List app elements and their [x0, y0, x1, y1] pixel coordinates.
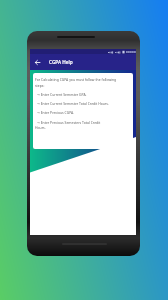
staticText: → Enter Previous CGPA.: [37, 110, 75, 115]
staticText: → Enter Previous Semesters Total Credit: [37, 120, 101, 125]
staticText: → Enter Current Semester GPA.: [37, 92, 87, 97]
staticText: For Calculating CGPA you must follow the…: [35, 77, 117, 82]
button[interactable]: Back: [32, 57, 43, 68]
staticText: CGPA Help: [49, 59, 73, 65]
staticText: Hours.: [35, 125, 46, 130]
staticText: → Enter Current Semester Total Credit Ho…: [37, 101, 109, 106]
staticText: steps:: [35, 83, 45, 88]
